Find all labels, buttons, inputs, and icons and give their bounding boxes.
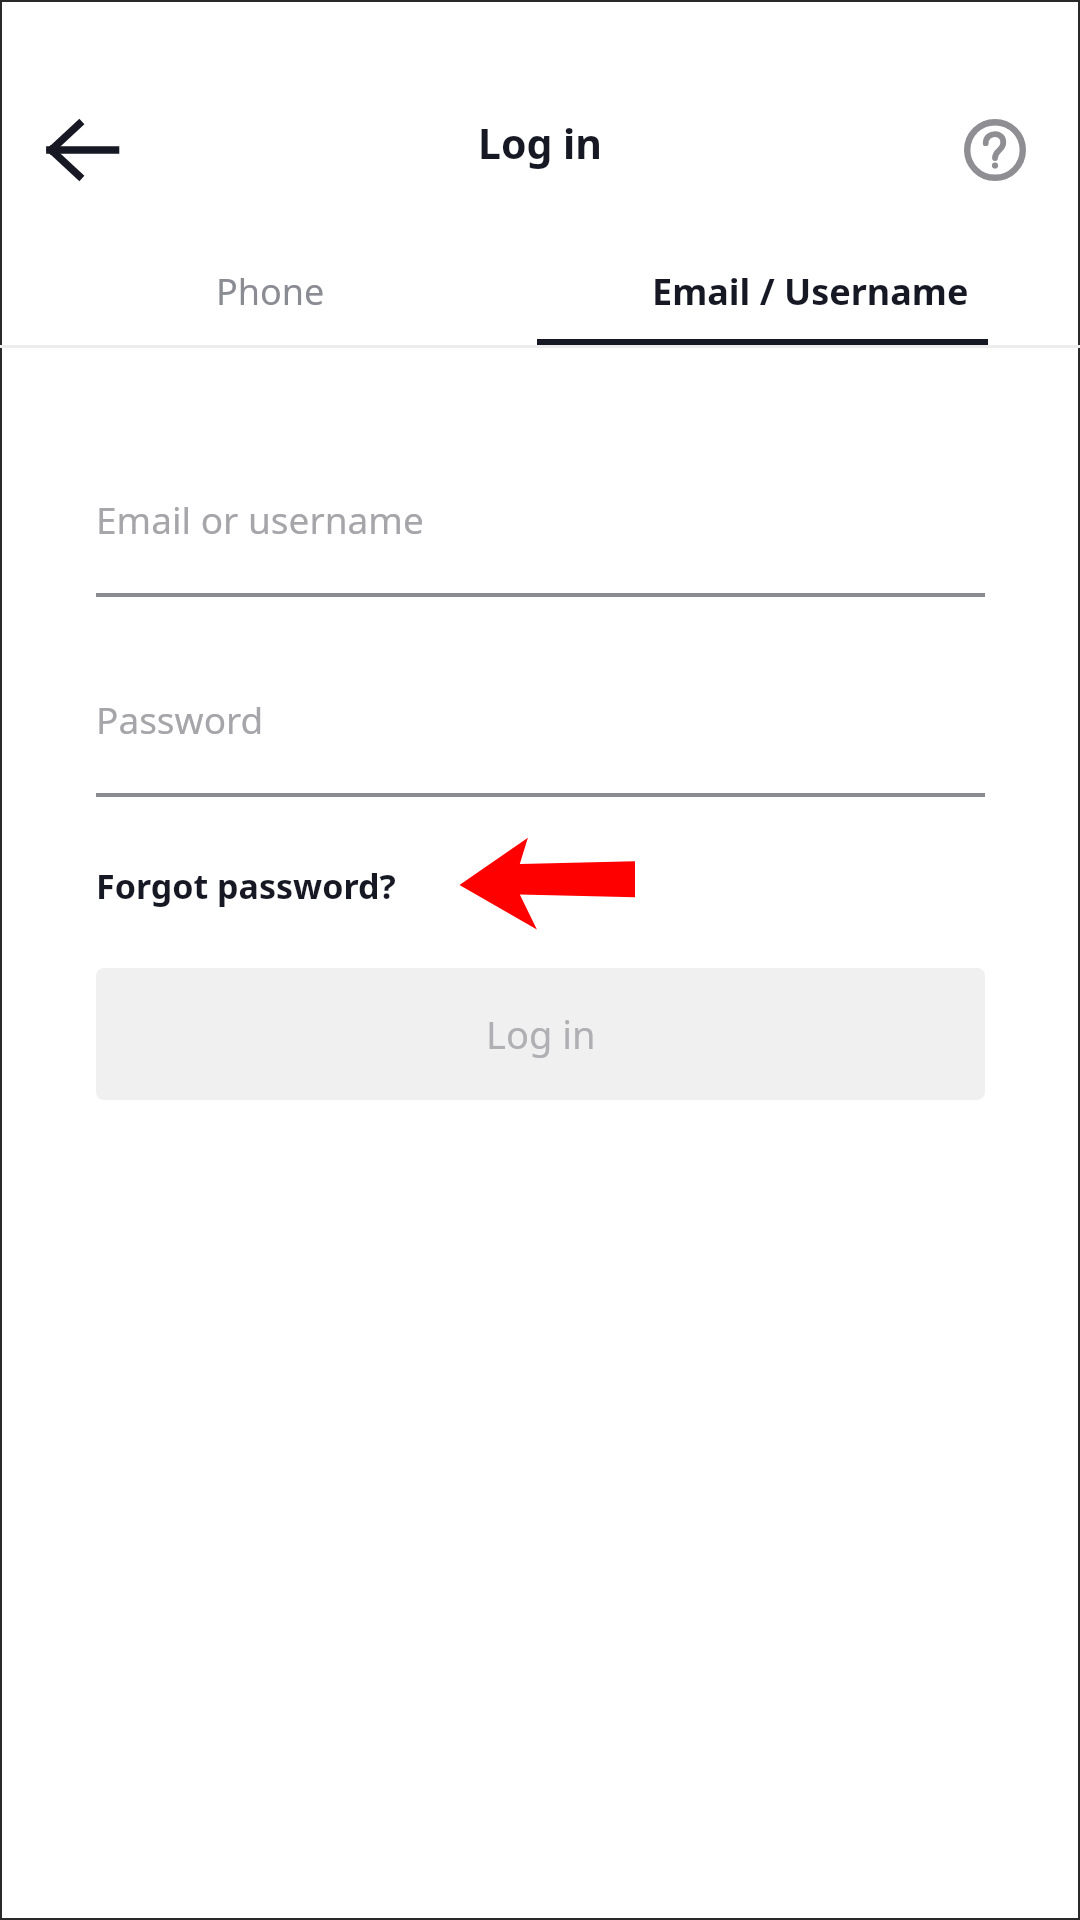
- staticText: Forgot password?: [96, 863, 396, 909]
- button[interactable]: Help: [948, 103, 1042, 197]
- button[interactable]: Password: [96, 678, 985, 798]
- staticText: Email / Username: [652, 267, 969, 316]
- button[interactable]: Back: [30, 100, 134, 200]
- button[interactable]: Phone: [0, 250, 540, 332]
- button[interactable]: Email or username: [96, 478, 985, 598]
- button[interactable]: Log in: [96, 968, 985, 1100]
- button[interactable]: Email / Username: [540, 250, 1080, 332]
- staticText: Email or username: [96, 494, 424, 544]
- staticText: Log in: [0, 115, 1080, 171]
- staticText: Log in: [486, 1008, 596, 1060]
- staticText: Password: [96, 694, 264, 744]
- button[interactable]: Forgot password?: [96, 855, 396, 917]
- staticText: Phone: [216, 267, 325, 316]
